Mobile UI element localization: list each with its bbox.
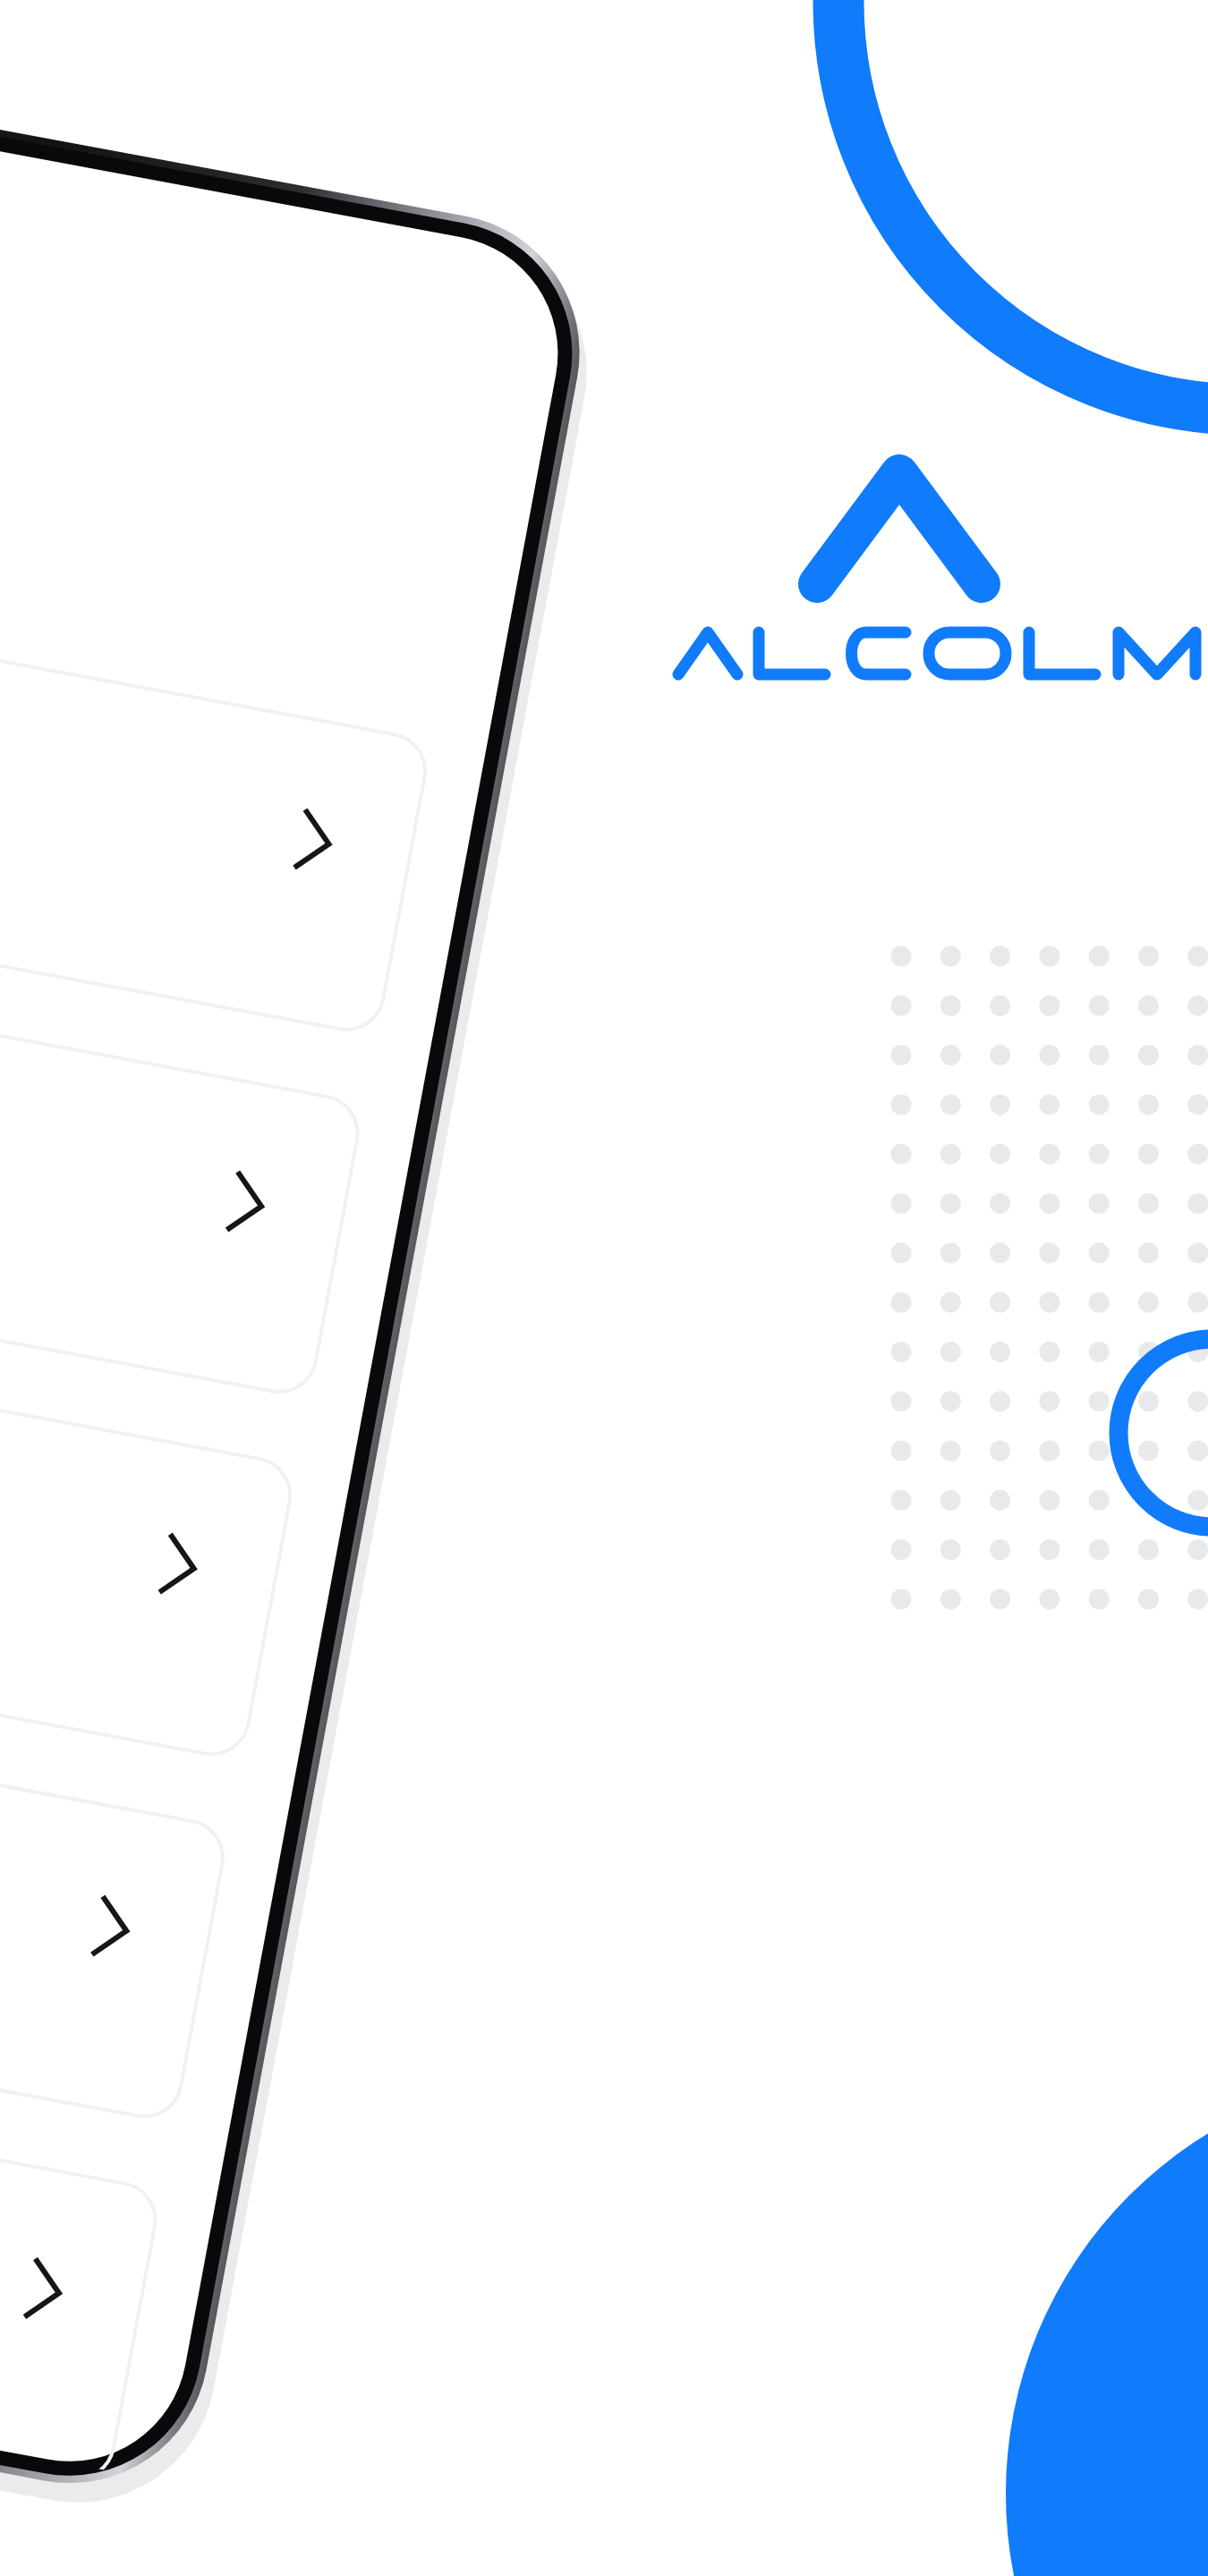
button[interactable]: ALCOLM logo bbox=[237, 152, 398, 228]
